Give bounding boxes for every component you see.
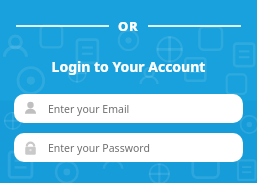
staticText: Login to Your Account (0, 57, 257, 76)
staticText: OR (118, 17, 139, 35)
button[interactable]: Password (14, 133, 243, 162)
other: Email (22, 100, 39, 117)
staticText: Enter your Password (48, 141, 150, 155)
button[interactable]: Email (14, 94, 243, 123)
staticText: Enter your Email (48, 102, 130, 116)
other: Password (22, 139, 39, 156)
